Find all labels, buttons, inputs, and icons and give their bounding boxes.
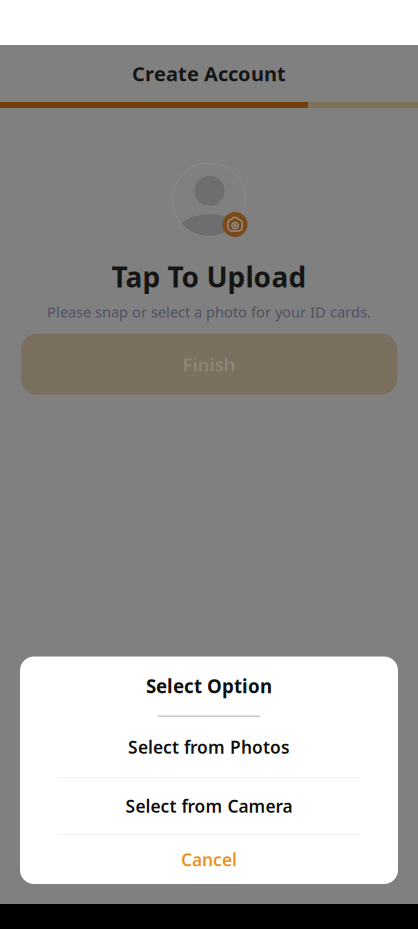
staticText: Create Account (132, 60, 286, 87)
button[interactable]: Select from Photos (20, 717, 398, 777)
button[interactable]: Finish (21, 334, 397, 395)
staticText: Select Option (146, 674, 272, 698)
staticText: Tap To Upload (111, 258, 306, 295)
button[interactable]: Change profile photo (222, 212, 247, 237)
button[interactable]: Select from Camera (20, 778, 398, 834)
staticText: Cancel (181, 848, 237, 871)
staticText: Finish (182, 352, 235, 377)
button[interactable]: Cancel (20, 835, 398, 884)
staticText: Select from Camera (125, 794, 292, 817)
staticText: Select from Photos (128, 735, 290, 758)
staticText: Please snap or select a photo for your I… (47, 302, 371, 322)
